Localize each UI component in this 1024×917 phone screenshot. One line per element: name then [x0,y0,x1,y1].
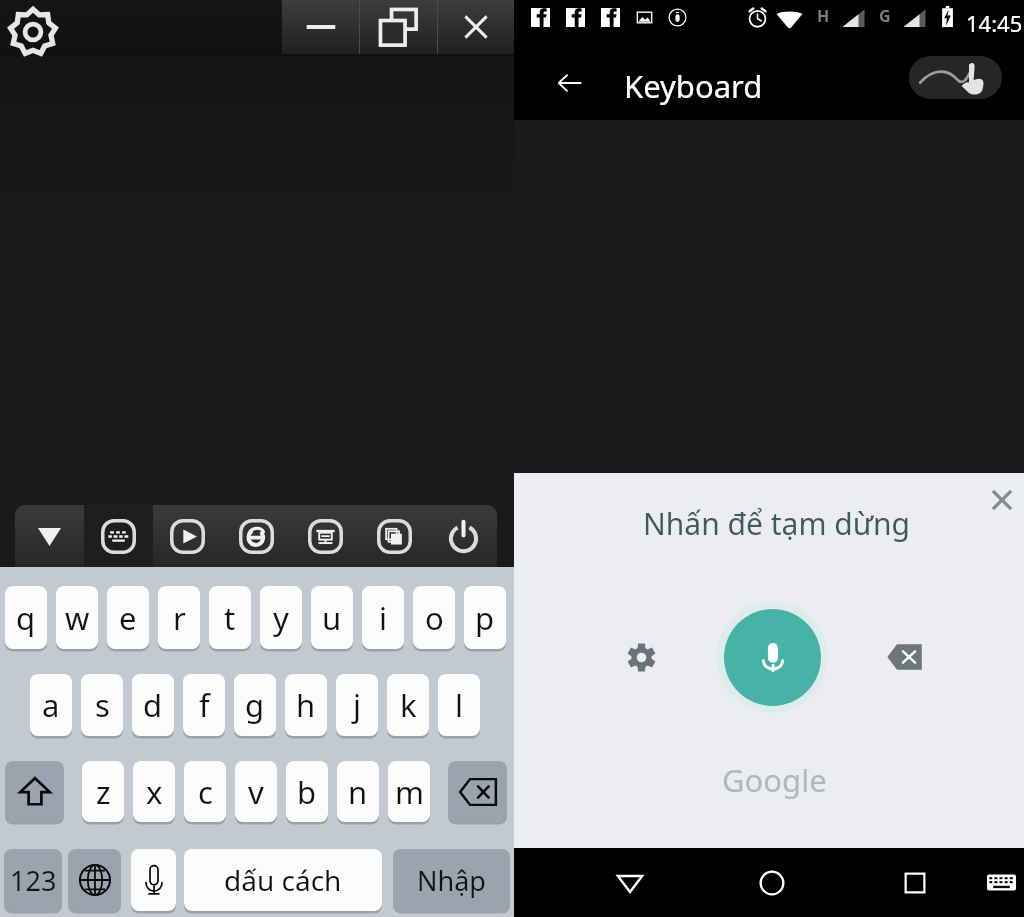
button[interactable]: o [413,586,455,649]
button[interactable]: 123 [4,849,62,911]
button[interactable]: Backspace [448,761,507,822]
staticText: h [296,684,316,726]
button[interactable]: z [82,761,124,822]
button[interactable]: m [388,761,430,822]
button[interactable]: Restore [360,0,437,54]
button[interactable]: b [286,761,328,822]
staticText: r [173,597,186,639]
staticText: y [273,597,289,639]
staticText: z [96,771,111,813]
button[interactable]: Back [540,53,600,113]
button[interactable]: Minimize [282,0,359,54]
button[interactable]: Projector [291,505,360,568]
staticText: p [475,597,495,639]
button[interactable]: y [260,586,302,649]
staticText: g [245,684,265,726]
button[interactable]: h [285,674,327,736]
button[interactable]: g [234,674,276,736]
staticText: f [199,684,210,726]
button[interactable]: Microphone [724,609,821,706]
staticText: Nhấn để tạm dừng [643,503,910,544]
staticText: a [42,684,60,726]
button[interactable]: l [438,674,480,736]
button[interactable]: e [107,586,149,649]
button[interactable]: p [464,586,506,649]
button[interactable]: i [362,586,404,649]
button[interactable]: k [387,674,429,736]
button[interactable]: u [311,586,353,649]
staticText: Google [722,759,827,801]
staticText: G [879,5,891,27]
staticText: c [198,771,213,813]
staticText: l [455,684,463,726]
button[interactable]: Nhập [393,849,510,911]
staticText: v [248,771,264,813]
button[interactable]: Recents [881,848,949,917]
staticText: d [143,684,163,726]
button[interactable]: s [81,674,123,736]
button[interactable]: d [132,674,174,736]
staticText: t [224,597,236,639]
button[interactable]: c [184,761,226,822]
button[interactable]: Keyboard [84,505,153,568]
staticText: q [16,597,36,639]
button[interactable]: Collapse [15,505,84,568]
staticText: Nhập [417,862,486,899]
staticText: s [95,684,110,726]
staticText: n [348,771,368,813]
button[interactable]: j [336,674,378,736]
button[interactable]: Close [438,0,514,54]
staticText: i [379,597,387,639]
button[interactable]: t [209,586,251,649]
button[interactable]: f [183,674,225,736]
staticText: e [119,597,137,639]
button[interactable]: Browser [222,505,291,568]
button[interactable]: Language [68,849,121,911]
button[interactable]: a [30,674,72,736]
staticText: o [425,597,444,639]
staticText: w [65,597,90,639]
staticText: u [322,597,342,639]
staticText: 123 [10,862,57,899]
button[interactable]: x [133,761,175,822]
button[interactable]: dấu cách [184,849,382,911]
button[interactable]: Home [738,848,806,917]
staticText: dấu cách [224,861,342,899]
staticText: x [146,771,163,813]
staticText: Keyboard [624,65,763,107]
button[interactable]: Shift [5,761,64,822]
button[interactable]: q [5,586,47,649]
button[interactable]: Switch keyboard [971,848,1024,917]
button[interactable]: w [56,586,98,649]
button[interactable]: Backspace [879,631,931,683]
button[interactable]: n [337,761,379,822]
button[interactable]: r [158,586,200,649]
button[interactable]: Gesture typing [909,56,1002,99]
button[interactable]: Settings [9,8,57,56]
button[interactable]: Play [153,505,222,568]
button[interactable]: Voice input [131,849,176,911]
button[interactable]: Settings [615,631,667,683]
button[interactable]: Power [429,505,497,568]
button[interactable]: v [235,761,277,822]
staticText: m [395,771,424,813]
staticText: j [353,684,361,726]
button[interactable]: Windows [360,505,429,568]
staticText: k [400,684,417,726]
staticText: b [297,771,317,813]
staticText: 14:45 [966,8,1023,38]
button[interactable]: Close [976,474,1024,526]
button[interactable]: Back [596,848,664,917]
staticText: H [817,5,830,27]
